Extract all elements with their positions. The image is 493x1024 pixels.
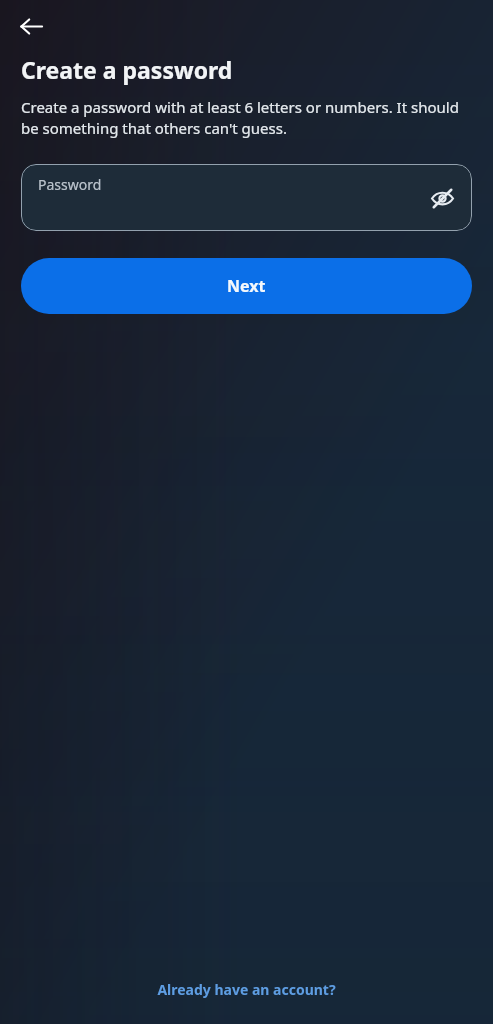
button[interactable]: Show password (421, 177, 463, 219)
staticText: Create a password (21, 54, 233, 85)
staticText: Next (227, 275, 266, 297)
staticText: Create a password with at least 6 letter… (21, 97, 473, 139)
button[interactable]: Password (21, 164, 472, 231)
staticText: Already have an account? (157, 980, 336, 999)
staticText: Password (38, 175, 102, 194)
button[interactable]: Next (21, 258, 472, 314)
button[interactable]: Already have an account? (145, 974, 348, 1005)
button[interactable]: Back (8, 3, 54, 49)
